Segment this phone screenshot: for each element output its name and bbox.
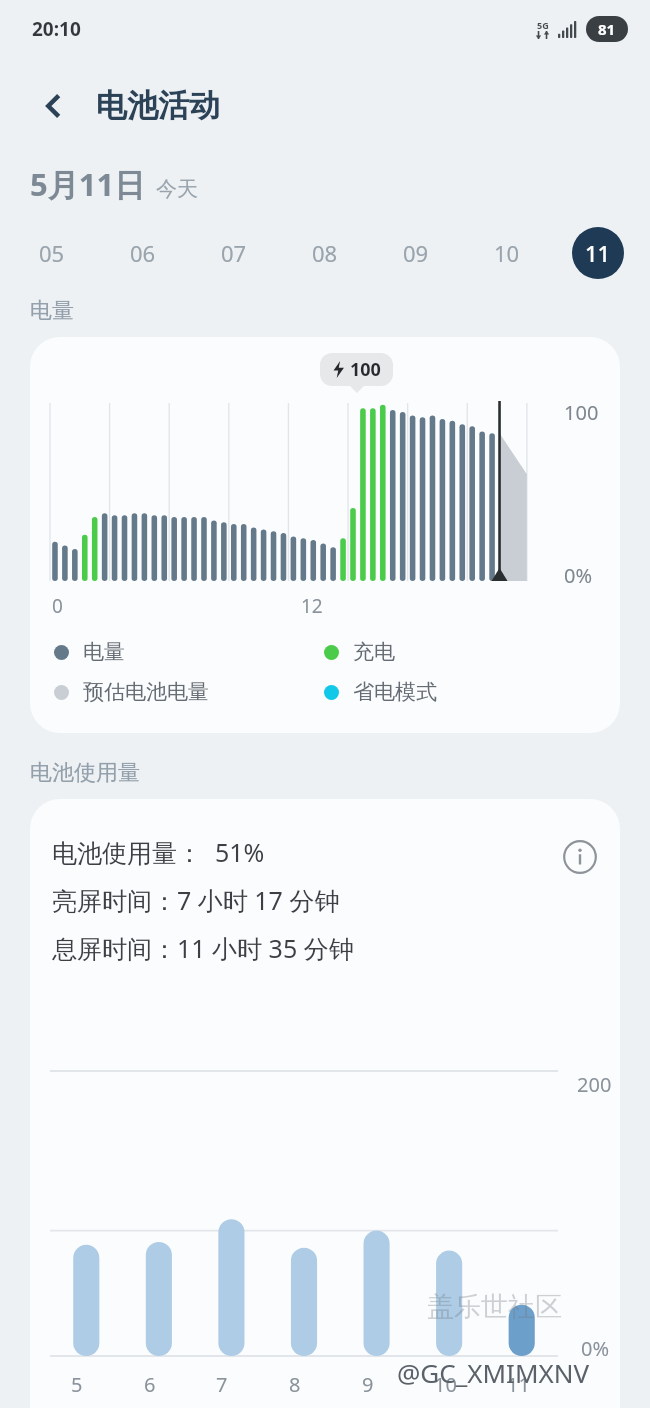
staticText: 20:10 — [32, 16, 81, 42]
staticText: 预估电池电量 — [83, 679, 209, 705]
staticText: 08 — [312, 238, 338, 268]
staticText: 电池活动 — [96, 86, 220, 125]
staticText: 07 — [221, 238, 247, 268]
staticText: 0% — [564, 562, 593, 589]
button[interactable]: 09 — [390, 227, 442, 279]
staticText: 0% — [581, 1335, 610, 1362]
staticText: 8 — [289, 1371, 319, 1398]
staticText: 电池使用量 — [30, 759, 140, 787]
staticText: 电量 — [83, 639, 125, 665]
staticText: 6 — [144, 1371, 174, 1398]
button[interactable]: Back — [26, 78, 82, 134]
staticText: 11 — [507, 1371, 537, 1398]
staticText: 充电 — [353, 639, 395, 665]
staticText: 电池使用量： 51% — [52, 835, 265, 869]
staticText: 10 — [494, 238, 520, 268]
staticText: @GC_XMIMXNV — [397, 1355, 590, 1390]
staticText: 100 — [564, 399, 599, 426]
button[interactable]: 08 — [299, 227, 351, 279]
staticText: 200 — [577, 1071, 612, 1098]
staticText: 10 — [434, 1371, 464, 1398]
staticText: 今天 — [156, 176, 198, 202]
button[interactable]: 07 — [208, 227, 260, 279]
staticText: 5 — [71, 1371, 101, 1398]
staticText: 7 — [216, 1371, 246, 1398]
staticText: 11 — [585, 238, 611, 268]
button[interactable]: 10 — [481, 227, 533, 279]
staticText: 81 — [598, 19, 616, 39]
staticText: 盖乐世社区 — [427, 1290, 562, 1324]
staticText: 电量 — [30, 297, 74, 325]
button[interactable]: 100 — [30, 337, 620, 733]
staticText: 100 — [350, 357, 381, 382]
staticText: 亮屏时间：7 小时 17 分钟 — [52, 883, 340, 917]
staticText: 05 — [39, 238, 65, 268]
staticText: 9 — [362, 1371, 392, 1398]
staticText: 06 — [130, 238, 156, 268]
button[interactable]: 11 — [572, 227, 624, 279]
staticText: 0 — [52, 593, 63, 619]
button[interactable]: 05 — [26, 227, 78, 279]
staticText: 省电模式 — [353, 679, 437, 705]
staticText: 5月11日 — [30, 163, 146, 205]
button[interactable]: Info — [558, 835, 602, 879]
staticText: 息屏时间：11 小时 35 分钟 — [52, 931, 354, 965]
staticText: 12 — [301, 593, 323, 619]
staticText: 09 — [403, 238, 429, 268]
staticText: 5G — [537, 19, 549, 31]
button[interactable]: 06 — [117, 227, 169, 279]
